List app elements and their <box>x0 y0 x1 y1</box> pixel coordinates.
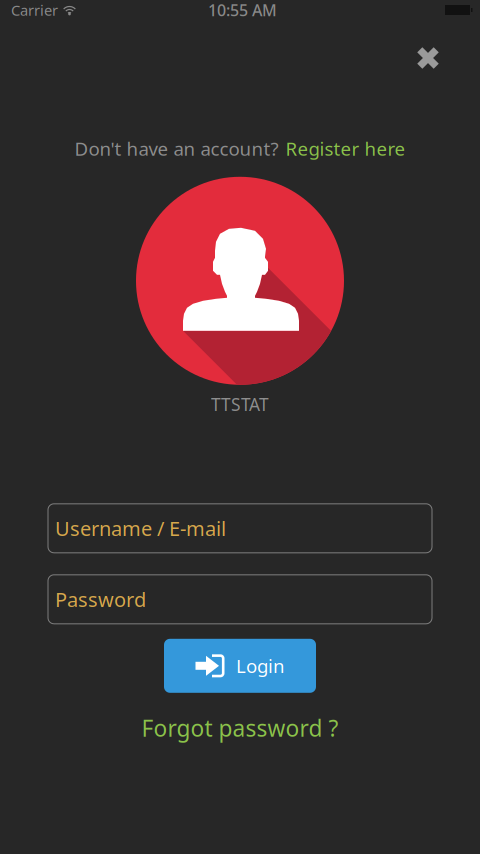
staticText: Don't have an account? <box>74 136 278 161</box>
staticText: Forgot password ? <box>141 713 338 743</box>
button[interactable]: Login <box>164 639 316 693</box>
staticText: Carrier <box>11 0 58 20</box>
staticText: Login <box>236 653 285 678</box>
button[interactable]: Register here <box>285 136 405 161</box>
button[interactable]: Password <box>48 575 432 624</box>
staticText: Password <box>55 586 146 613</box>
staticText: TTSTAT <box>211 393 269 416</box>
button[interactable]: Forgot password ? <box>141 713 338 743</box>
button[interactable]: Close <box>406 36 450 80</box>
staticText: Register here <box>285 136 405 161</box>
staticText: Username / E-mail <box>55 515 226 542</box>
button[interactable]: Username / E-mail <box>48 504 432 553</box>
staticText: 10:55 AM <box>208 0 277 21</box>
